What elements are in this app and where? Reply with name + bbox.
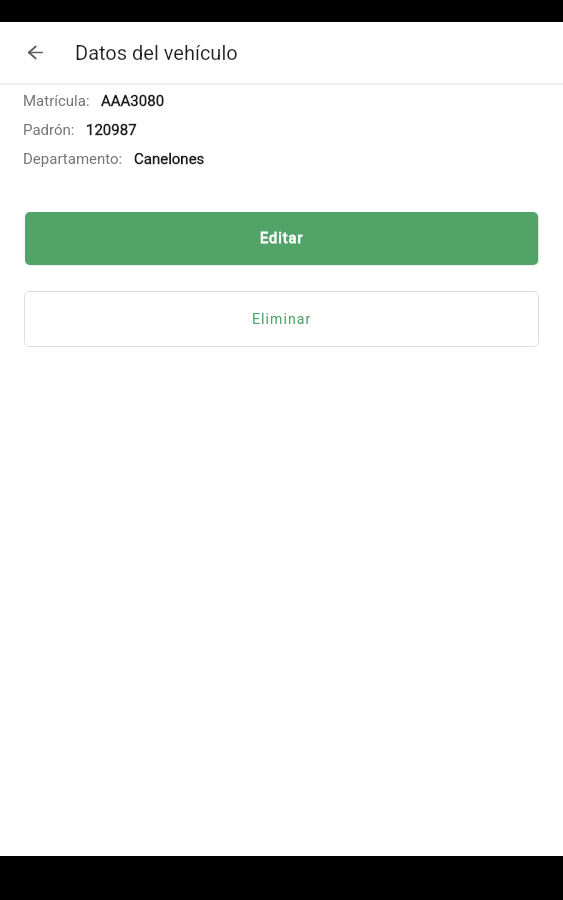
staticText: 120987 [86,121,137,139]
button[interactable]: Editar [25,212,538,265]
staticText: Matrícula: [23,92,90,110]
staticText: Datos del vehículo [75,41,238,64]
button[interactable]: Back [13,30,58,75]
staticText: Eliminar [252,311,312,327]
staticText: Departamento: [23,150,123,168]
staticText: AAA3080 [101,92,165,110]
button[interactable]: Eliminar [24,291,539,347]
staticText: Editar [260,230,304,247]
staticText: Padrón: [23,121,75,139]
staticText: Canelones [134,150,205,168]
